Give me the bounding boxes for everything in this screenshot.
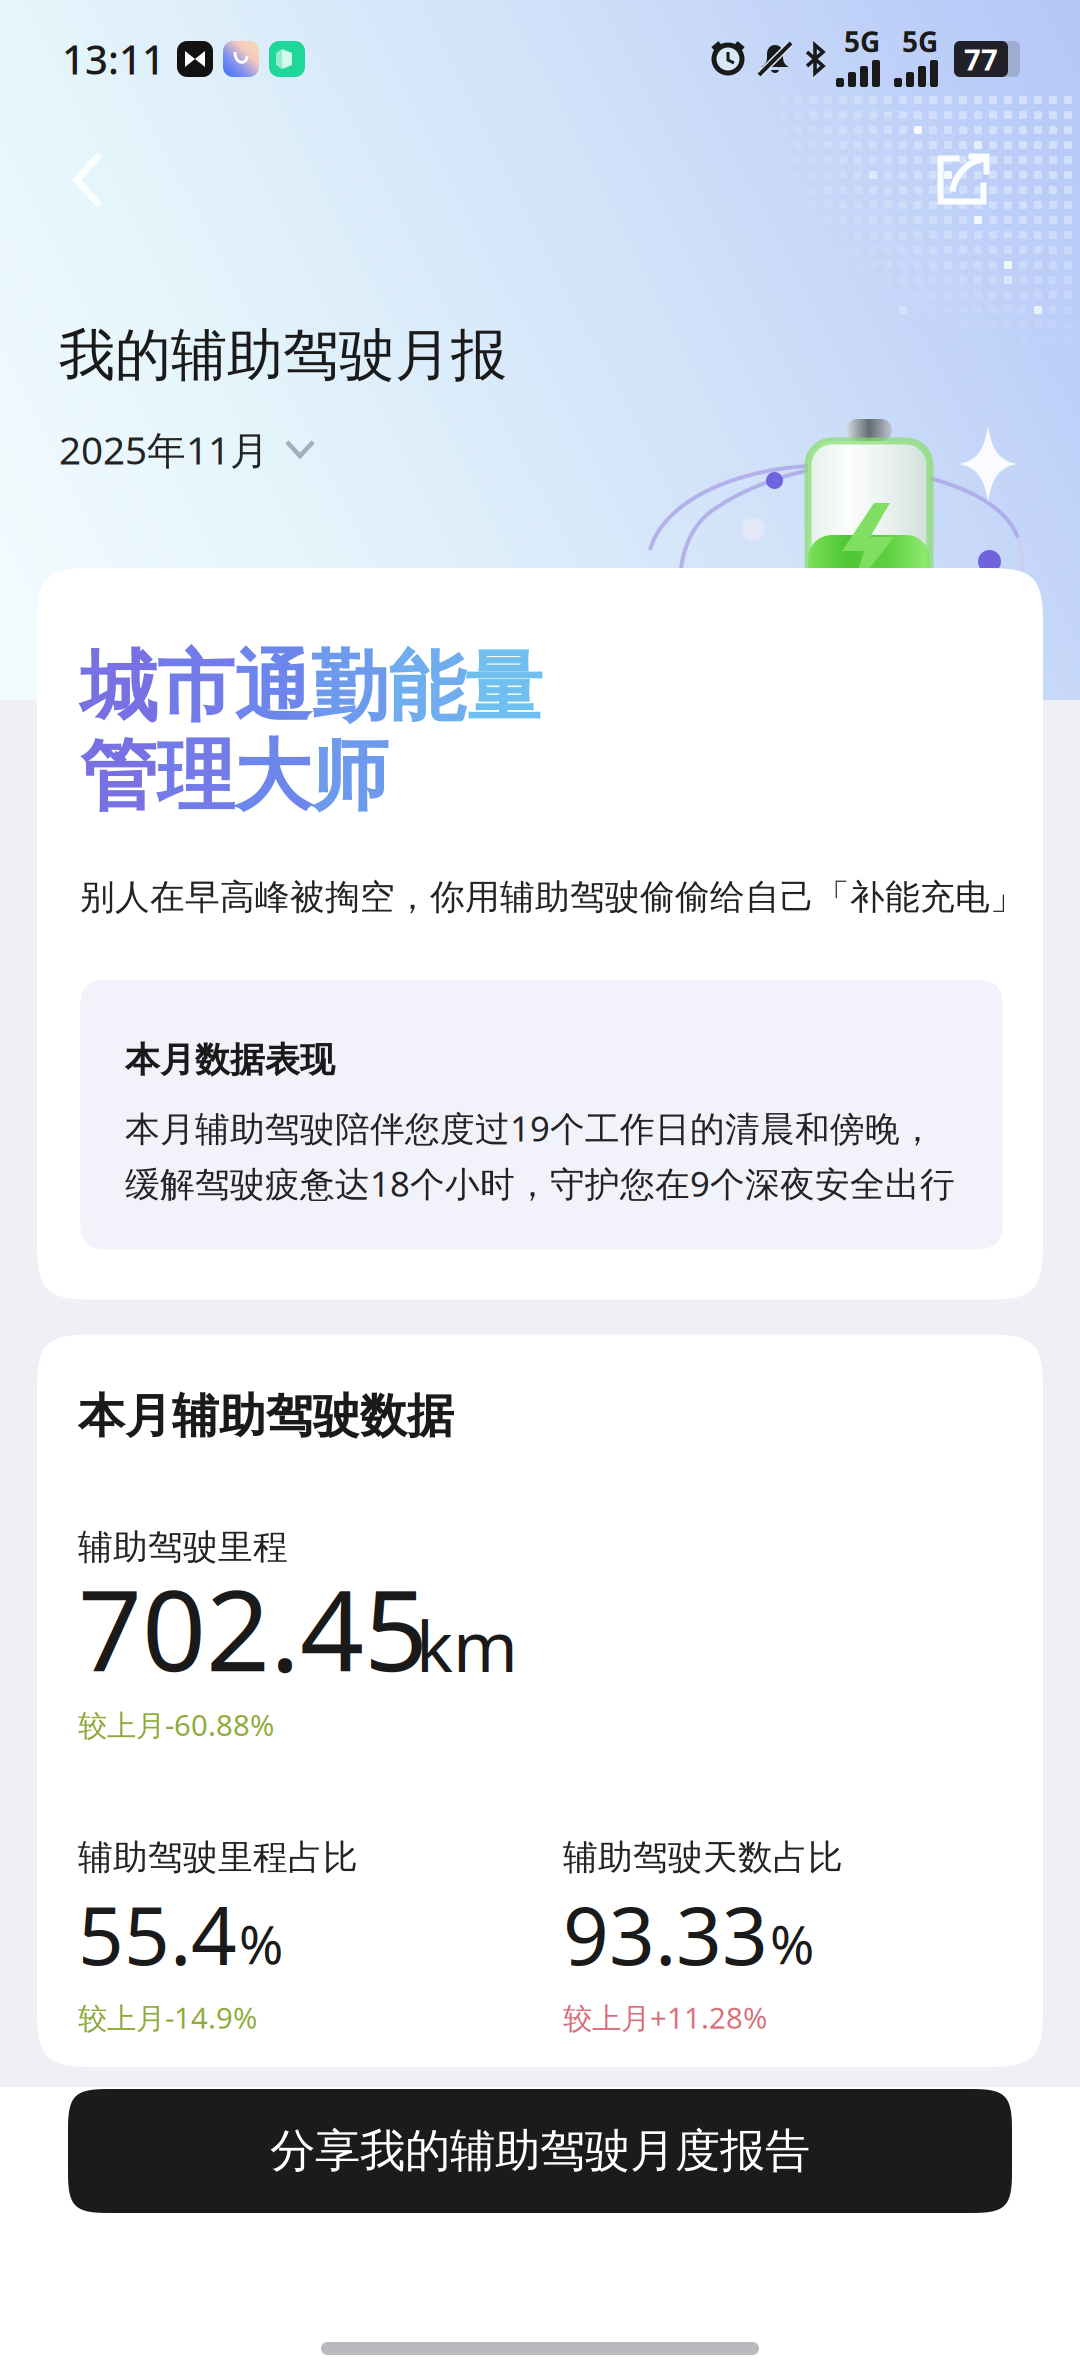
button[interactable]: Share — [916, 134, 1008, 226]
staticText: 大 — [234, 729, 311, 824]
staticText: 2025年11月 — [59, 424, 269, 475]
staticText: 我的辅助驾驶月报 — [59, 321, 507, 390]
staticText: 分享我的辅助驾驶月度报告 — [270, 2123, 810, 2179]
staticText: 较上月-60.88% — [78, 1705, 274, 1744]
staticText: 77 — [964, 39, 998, 78]
staticText: 市 — [157, 640, 234, 735]
button[interactable]: Back — [44, 134, 132, 226]
staticText: 城 — [80, 640, 157, 735]
staticText: km — [416, 1599, 518, 1691]
staticText: 55.4 — [78, 1881, 237, 1987]
staticText: % — [770, 1908, 814, 1979]
staticText: 5G — [902, 23, 938, 60]
button[interactable]: 2025年11月 — [59, 424, 315, 475]
staticText: 较上月+11.28% — [563, 1998, 767, 2037]
staticText: 702.45 — [78, 1553, 428, 1702]
staticText: 辅助驾驶天数占比 — [563, 1836, 843, 1879]
staticText: 通 — [234, 640, 311, 735]
staticText: 本月辅助驾驶陪伴您度过19个工作日的清晨和傍晚，缓解驾驶疲惫达18个小时，守护您… — [125, 1105, 955, 1206]
staticText: 本月辅助驾驶数据 — [78, 1388, 454, 1445]
staticText: 较上月-14.9% — [78, 1998, 257, 2037]
staticText: 管 — [80, 729, 157, 824]
button[interactable]: 分享我的辅助驾驶月度报告 — [68, 2089, 1012, 2213]
staticText: 辅助驾驶里程占比 — [78, 1836, 358, 1879]
staticText: % — [239, 1908, 283, 1979]
staticText: 辅助驾驶里程 — [78, 1526, 288, 1568]
staticText: 师 — [311, 729, 388, 824]
staticText: 别人在早高峰被掏空，你用辅助驾驶偷偷给自己「补能充电」 — [80, 876, 1025, 919]
staticText: 13:11 — [62, 32, 165, 85]
staticText: 能 — [388, 640, 465, 735]
staticText: 量 — [465, 640, 542, 735]
staticText: 93.33 — [563, 1881, 768, 1987]
staticText: 理 — [157, 729, 234, 824]
staticText: 勤 — [311, 640, 388, 735]
staticText: 本月数据表现 — [125, 1039, 335, 1081]
staticText: 5G — [844, 23, 880, 60]
